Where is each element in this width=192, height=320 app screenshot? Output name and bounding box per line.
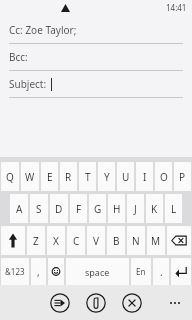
staticText: H — [113, 202, 121, 216]
button[interactable]: N — [127, 226, 145, 255]
staticText: Z — [33, 234, 39, 248]
button[interactable]: Enter — [171, 258, 191, 285]
staticText: F — [76, 202, 82, 216]
button[interactable]: E — [41, 162, 58, 191]
staticText: D — [55, 202, 63, 216]
button[interactable]: U — [117, 162, 134, 191]
button[interactable]: A — [10, 194, 28, 223]
staticText: I — [143, 170, 147, 184]
button[interactable]: V — [87, 226, 105, 255]
staticText: N — [132, 234, 140, 248]
staticText: . — [160, 265, 163, 279]
staticText: W — [25, 170, 35, 184]
button[interactable]: Emoji — [48, 258, 64, 285]
staticText: Q — [6, 170, 14, 184]
staticText: space — [85, 266, 110, 278]
staticText: E — [47, 170, 53, 184]
button[interactable]: Send — [50, 293, 70, 313]
staticText: S — [36, 202, 42, 216]
staticText: En — [136, 266, 146, 277]
button[interactable]: Subject: — [0, 71, 192, 98]
staticText: B — [113, 234, 120, 248]
button[interactable]: R — [60, 162, 77, 191]
button[interactable]: Backspace — [167, 226, 191, 255]
button[interactable]: More options — [166, 298, 184, 308]
button[interactable]: Z — [27, 226, 45, 255]
staticText: T — [85, 170, 91, 184]
button[interactable]: G — [89, 194, 106, 223]
button[interactable]: En — [131, 258, 151, 285]
button[interactable]: T — [79, 162, 96, 191]
staticText: C — [73, 234, 80, 248]
button[interactable]: D — [50, 194, 68, 223]
button[interactable]: O — [155, 162, 172, 191]
button[interactable]: space — [66, 258, 129, 285]
staticText: &123 — [5, 266, 25, 277]
button[interactable]: L — [165, 194, 182, 223]
staticText: V — [93, 234, 99, 248]
staticText: K — [151, 202, 158, 216]
staticText: M — [151, 234, 161, 248]
button[interactable]: , — [31, 258, 46, 285]
button[interactable]: . — [153, 258, 169, 285]
button[interactable]: Shift — [1, 226, 25, 255]
button[interactable]: W — [21, 162, 39, 191]
staticText: Bcc: — [9, 50, 28, 64]
button[interactable]: C — [67, 226, 85, 255]
button[interactable]: Close — [122, 293, 142, 313]
staticText: G — [94, 202, 102, 216]
button[interactable]: Attach — [86, 293, 106, 313]
staticText: 14:41 — [166, 2, 187, 13]
staticText: X — [53, 234, 59, 248]
button[interactable]: Y — [98, 162, 115, 191]
button[interactable]: Cc: Zoe Taylor; — [0, 17, 192, 44]
button[interactable]: &123 — [1, 258, 29, 285]
staticText: Subject: — [9, 77, 47, 91]
staticText: Cc: Zoe Taylor; — [9, 23, 77, 37]
staticText: L — [171, 202, 177, 216]
staticText: Y — [104, 170, 110, 184]
staticText: O — [160, 170, 168, 184]
other: Status — [61, 4, 70, 12]
button[interactable]: P — [174, 162, 191, 191]
staticText: J — [134, 202, 137, 216]
button[interactable]: I — [136, 162, 153, 191]
button[interactable]: S — [30, 194, 48, 223]
button[interactable]: Bcc: — [0, 44, 192, 71]
button[interactable]: H — [108, 194, 125, 223]
button[interactable]: K — [146, 194, 163, 223]
button[interactable]: F — [70, 194, 87, 223]
staticText: P — [179, 170, 186, 184]
staticText: R — [65, 170, 72, 184]
button[interactable]: M — [147, 226, 165, 255]
button[interactable]: J — [127, 194, 144, 223]
staticText: U — [122, 170, 130, 184]
button[interactable]: Q — [1, 162, 19, 191]
staticText: A — [16, 202, 23, 216]
button[interactable]: X — [47, 226, 65, 255]
staticText: , — [37, 265, 40, 279]
button[interactable]: B — [107, 226, 125, 255]
